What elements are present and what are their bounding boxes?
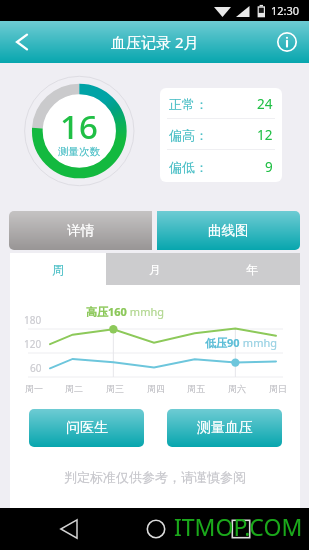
staticText: 180 <box>24 313 42 327</box>
button[interactable]: Information <box>265 21 309 63</box>
button[interactable]: 周 <box>10 253 106 285</box>
staticText: 周六 <box>228 383 246 394</box>
staticText: 周一 <box>25 383 43 394</box>
button[interactable]: 问医生 <box>29 409 144 447</box>
button[interactable]: Home <box>135 508 177 550</box>
staticText: 周五 <box>187 383 205 394</box>
staticText: 9 <box>265 158 273 176</box>
staticText: 周日 <box>269 383 287 394</box>
staticText: 周二 <box>65 383 83 394</box>
button[interactable]: Back <box>0 21 44 63</box>
staticText: 血压记录 2月 <box>111 32 199 52</box>
button[interactable]: 月 <box>106 253 203 285</box>
staticText: 偏高： <box>169 127 208 143</box>
button[interactable]: Back <box>48 508 90 550</box>
button[interactable]: 年 <box>203 253 300 285</box>
staticText: 年 <box>246 262 258 277</box>
staticText: 周四 <box>147 383 165 394</box>
button[interactable]: 详情 <box>9 211 152 250</box>
button[interactable]: Recent apps <box>220 508 262 550</box>
staticText: 12 <box>257 126 273 144</box>
staticText: 周三 <box>106 383 124 394</box>
button[interactable]: 曲线图 <box>157 211 300 250</box>
staticText: 24 <box>257 95 273 113</box>
staticText: 判定标准仅供参考，请谨慎参阅 <box>10 469 300 485</box>
staticText: 正常： <box>169 96 208 112</box>
staticText: mmhg <box>127 304 164 319</box>
staticText: 周 <box>52 262 64 277</box>
staticText: 16 <box>60 104 98 148</box>
staticText: 120 <box>24 337 42 351</box>
staticText: 曲线图 <box>208 222 249 239</box>
staticText: 60 <box>30 361 42 375</box>
staticText: 低压90 <box>205 335 240 350</box>
staticText: 问医生 <box>66 419 108 437</box>
staticText: 测量次数 <box>58 145 100 158</box>
staticText: 测量血压 <box>197 419 253 437</box>
button[interactable]: 测量血压 <box>167 409 282 447</box>
staticText: 详情 <box>67 222 94 239</box>
staticText: ITMOP.COM <box>174 511 303 537</box>
staticText: 偏低： <box>169 159 208 175</box>
staticText: 月 <box>149 262 161 277</box>
staticText: 高压160 <box>86 304 127 319</box>
staticText: mmhg <box>240 335 277 350</box>
staticText: 12:30 <box>271 3 300 18</box>
